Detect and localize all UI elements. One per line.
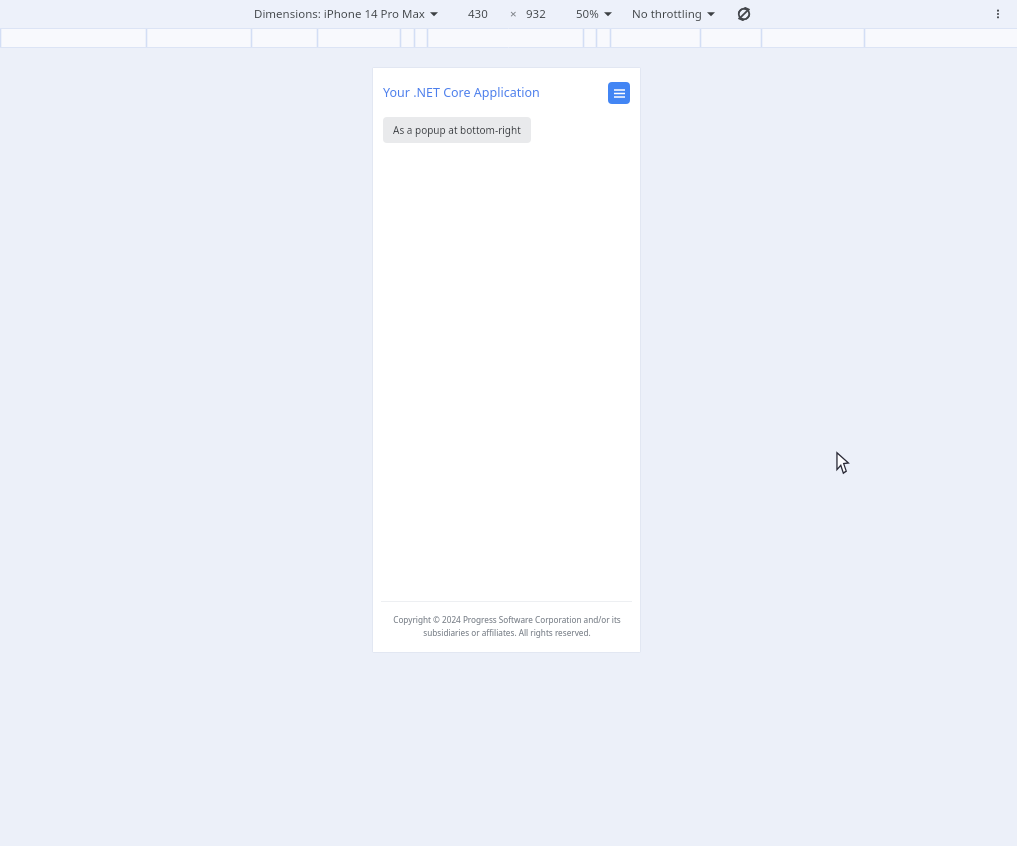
staticText: Dimensions: iPhone 14 Pro Max [254,6,425,22]
staticText: subsidiaries or affiliates. All rights r… [423,627,591,638]
staticText: As a popup at bottom-right [393,123,521,137]
button[interactable]: Dimensions: iPhone 14 Pro Max [252,3,440,25]
button[interactable]: Menu [608,82,630,104]
button[interactable]: No throttling [630,3,717,25]
button[interactable]: 932 [526,6,546,22]
button[interactable]: Rotate viewport [733,3,755,25]
button[interactable]: Your .NET Core Application [383,84,540,101]
staticText: Copyright © 2024 Progress Software Corpo… [393,614,621,625]
button[interactable]: More options [987,3,1009,25]
staticText: No throttling [632,6,702,22]
button[interactable]: 430 [468,6,488,22]
button[interactable]: As a popup at bottom-right [383,117,531,143]
staticText: 50% [576,6,599,22]
button[interactable]: 50% [574,3,614,25]
staticText: × [510,6,517,22]
